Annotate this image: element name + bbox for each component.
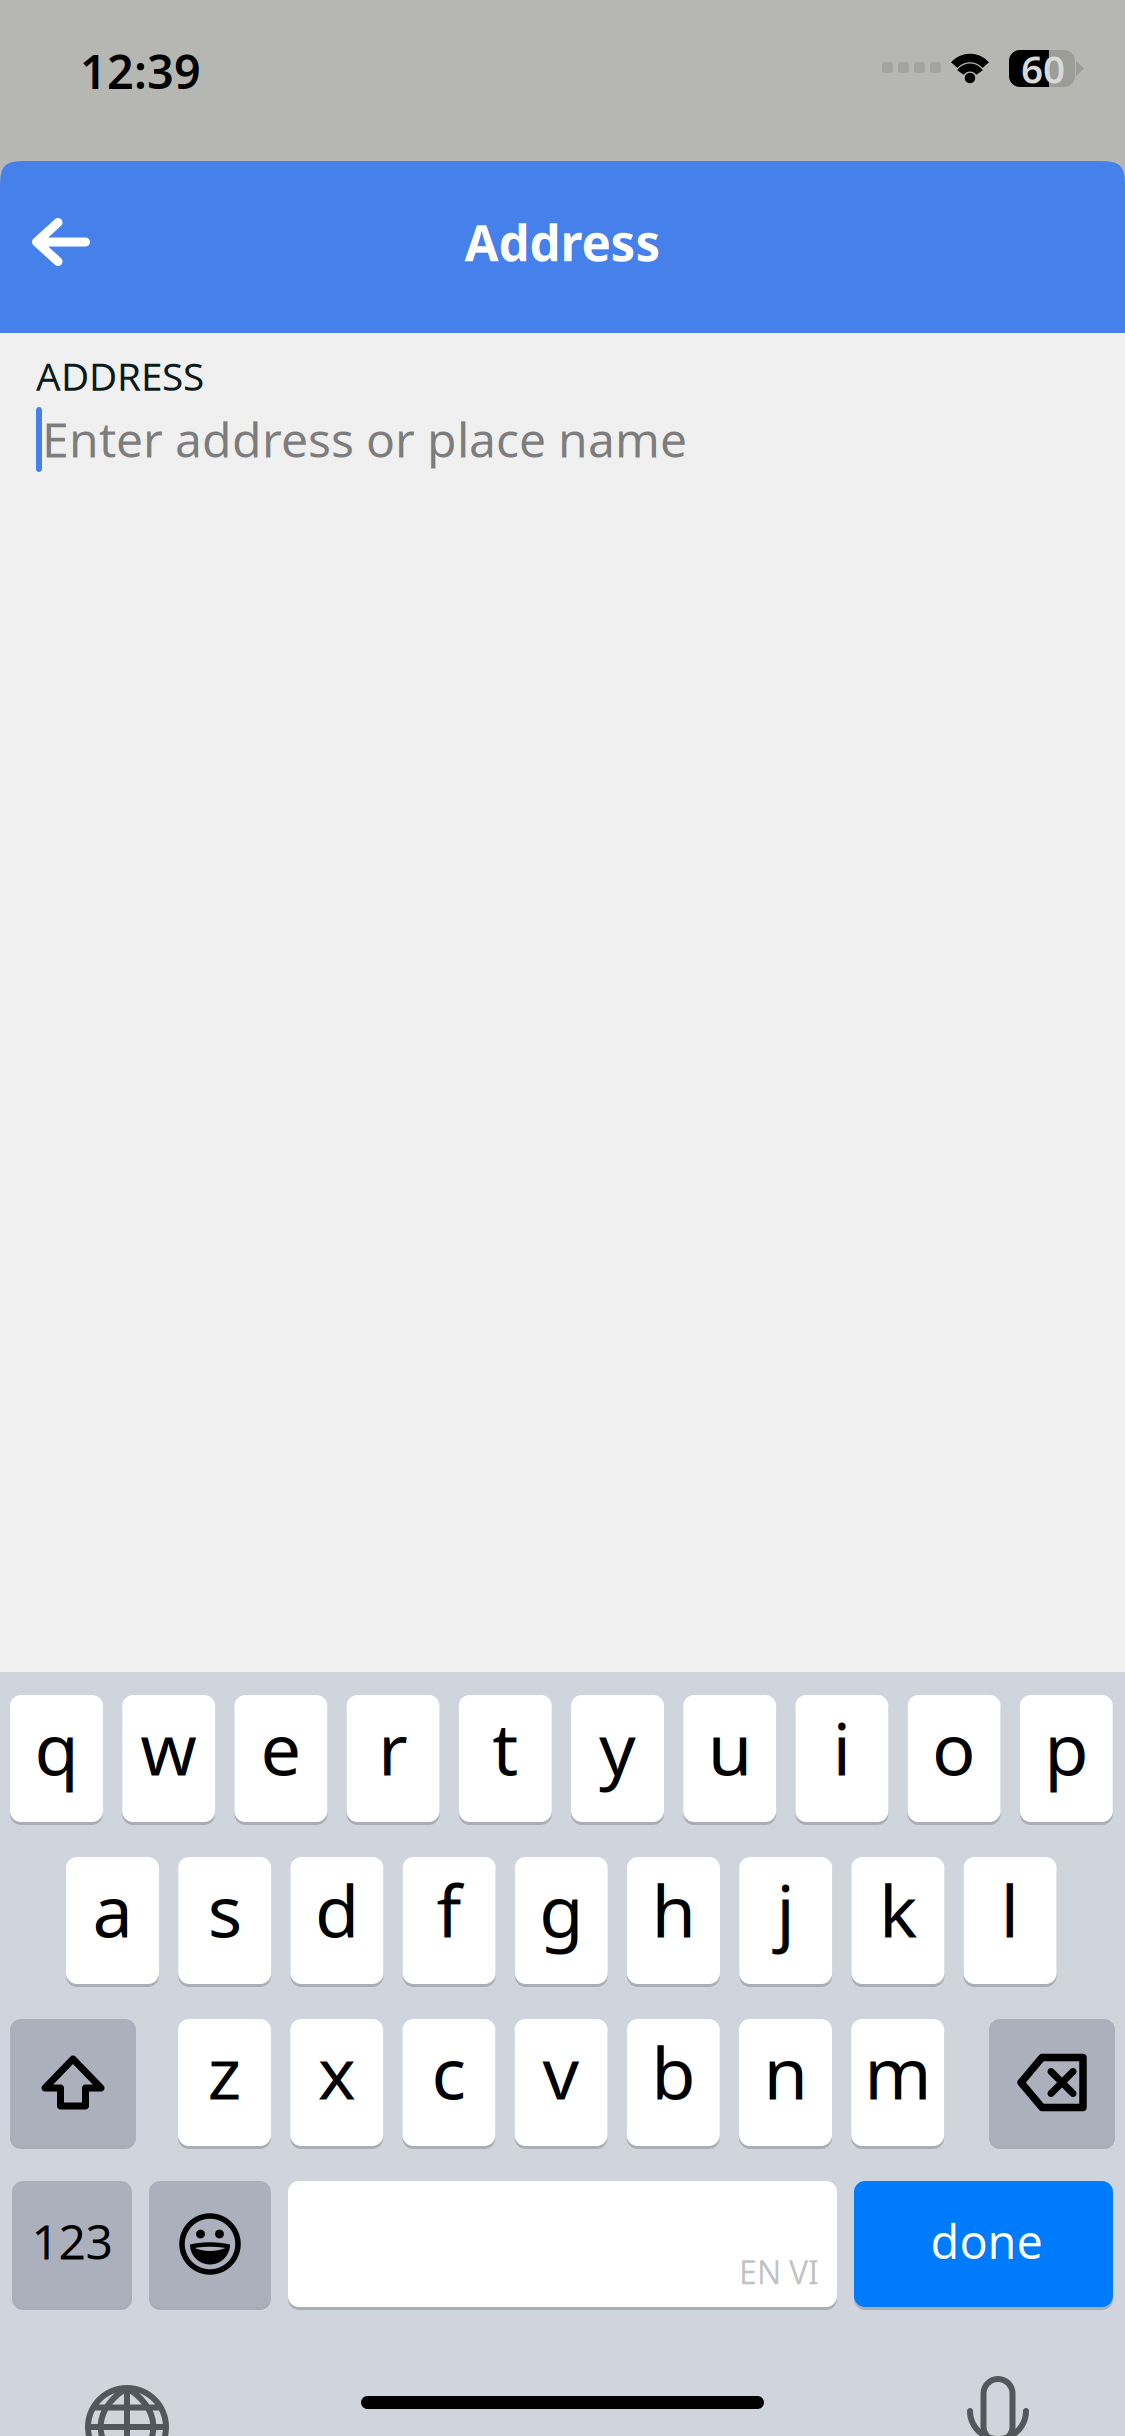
staticText: ADDRESS <box>36 350 204 401</box>
staticText: k <box>879 1862 917 1957</box>
button[interactable]: u <box>683 1695 776 1825</box>
staticText: 60 <box>1021 43 1065 94</box>
staticText: s <box>208 1862 242 1957</box>
button[interactable]: b <box>627 2019 720 2149</box>
button[interactable]: Enter address or place name <box>42 407 687 471</box>
staticText: b <box>651 2024 695 2119</box>
button[interactable]: done <box>854 2181 1113 2310</box>
button[interactable]: f <box>403 1857 496 1987</box>
button[interactable]: g <box>515 1857 608 1987</box>
button[interactable]: Back <box>0 161 150 333</box>
button[interactable]: v <box>515 2019 608 2149</box>
staticText: w <box>140 1700 197 1795</box>
button[interactable]: Shift <box>10 2019 136 2149</box>
staticText: p <box>1044 1700 1088 1795</box>
staticText: y <box>599 1700 636 1795</box>
staticText: j <box>776 1862 795 1957</box>
staticText: u <box>708 1700 752 1795</box>
button[interactable]: k <box>851 1857 944 1987</box>
staticText: done <box>930 2210 1042 2272</box>
button[interactable]: 123 <box>12 2181 132 2310</box>
staticText: l <box>1001 1862 1020 1957</box>
staticText: f <box>437 1862 462 1957</box>
button[interactable]: l <box>964 1857 1057 1987</box>
button[interactable]: q <box>10 1695 103 1825</box>
button[interactable]: y <box>571 1695 664 1825</box>
button[interactable]: t <box>459 1695 552 1825</box>
staticText: r <box>378 1700 408 1795</box>
button[interactable]: r <box>347 1695 440 1825</box>
staticText: n <box>763 2024 807 2119</box>
staticText: e <box>260 1700 301 1795</box>
button[interactable]: Delete <box>989 2019 1115 2149</box>
staticText: Enter address or place name <box>42 407 687 471</box>
staticText: 12:39 <box>80 40 201 102</box>
button[interactable]: Next keyboard <box>85 2385 169 2436</box>
button[interactable]: Space <box>288 2181 837 2310</box>
button[interactable]: z <box>178 2019 271 2149</box>
staticText: z <box>207 2024 241 2119</box>
staticText: v <box>543 2024 580 2119</box>
button[interactable]: i <box>795 1695 888 1825</box>
button[interactable]: m <box>851 2019 944 2149</box>
staticText: c <box>431 2024 466 2119</box>
button[interactable]: Dictation <box>969 2377 1027 2436</box>
button[interactable]: w <box>122 1695 215 1825</box>
button[interactable]: h <box>627 1857 720 1987</box>
button[interactable]: c <box>402 2019 495 2149</box>
staticText: a <box>92 1862 132 1957</box>
staticText: x <box>318 2024 356 2119</box>
button[interactable]: x <box>290 2019 383 2149</box>
staticText: t <box>492 1700 518 1795</box>
button[interactable]: e <box>234 1695 327 1825</box>
staticText: d <box>315 1862 359 1957</box>
button[interactable]: s <box>178 1857 271 1987</box>
button[interactable]: o <box>908 1695 1001 1825</box>
staticText: o <box>932 1700 976 1795</box>
button[interactable]: p <box>1020 1695 1113 1825</box>
button[interactable]: Emoji <box>149 2181 271 2310</box>
button[interactable]: j <box>739 1857 832 1987</box>
staticText: g <box>539 1862 583 1957</box>
staticText: q <box>34 1700 78 1795</box>
staticText: EN VI <box>739 2250 819 2293</box>
button[interactable]: a <box>66 1857 159 1987</box>
staticText: 123 <box>31 2209 112 2273</box>
button[interactable]: n <box>739 2019 832 2149</box>
staticText: i <box>832 1700 851 1795</box>
staticText: h <box>651 1862 695 1957</box>
staticText: Address <box>464 209 660 275</box>
staticText: m <box>864 2024 931 2119</box>
button[interactable]: d <box>290 1857 383 1987</box>
